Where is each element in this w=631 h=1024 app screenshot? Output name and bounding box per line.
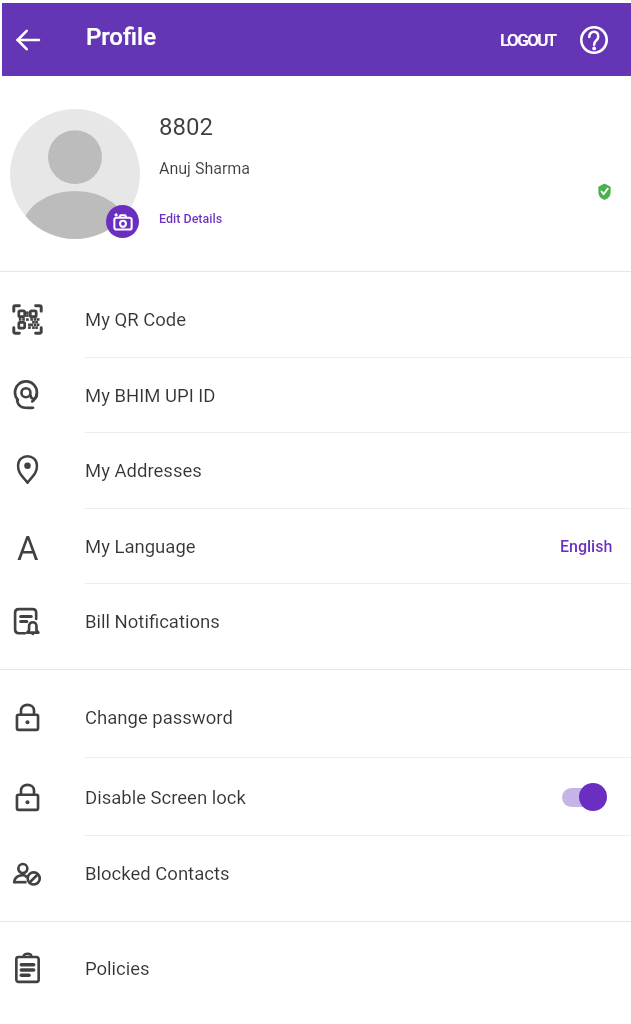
button[interactable]: Edit Details bbox=[159, 211, 223, 226]
button[interactable]: Blocked Contacts bbox=[0, 837, 631, 909]
staticText: My Addresses bbox=[85, 460, 202, 482]
button[interactable]: Disable Screen lock toggle bbox=[555, 780, 613, 814]
button[interactable]: Policies bbox=[0, 932, 631, 1004]
button[interactable]: My Addresses bbox=[0, 434, 631, 506]
staticText: Anuj Sharma bbox=[159, 159, 251, 178]
button[interactable]: Disable Screen lock bbox=[0, 761, 631, 833]
button[interactable]: My BHIM UPI ID bbox=[0, 359, 631, 431]
staticText: Edit Details bbox=[159, 211, 223, 226]
staticText: English bbox=[560, 537, 613, 556]
button[interactable]: A bbox=[0, 510, 631, 582]
staticText: My BHIM UPI ID bbox=[85, 385, 216, 407]
staticText: 8802 bbox=[159, 113, 213, 141]
staticText: Disable Screen lock bbox=[85, 787, 246, 809]
staticText: Profile bbox=[86, 23, 157, 51]
button[interactable]: Bill Notifications bbox=[0, 585, 631, 657]
staticText: Change password bbox=[85, 707, 233, 729]
staticText: LOGOUT bbox=[500, 30, 556, 50]
staticText: Bill Notifications bbox=[85, 611, 220, 633]
button[interactable]: LOGOUT bbox=[494, 22, 562, 58]
staticText: My QR Code bbox=[85, 309, 187, 331]
button[interactable]: Help bbox=[574, 20, 614, 60]
button[interactable]: Back bbox=[5, 17, 51, 63]
staticText: Policies bbox=[85, 958, 150, 980]
button[interactable]: My QR Code bbox=[0, 283, 631, 355]
staticText: My Language bbox=[85, 536, 196, 558]
button[interactable]: Change password bbox=[0, 681, 631, 753]
button[interactable]: Change profile photo bbox=[106, 205, 139, 238]
staticText: Blocked Contacts bbox=[85, 863, 230, 885]
staticText: A bbox=[17, 529, 39, 560]
